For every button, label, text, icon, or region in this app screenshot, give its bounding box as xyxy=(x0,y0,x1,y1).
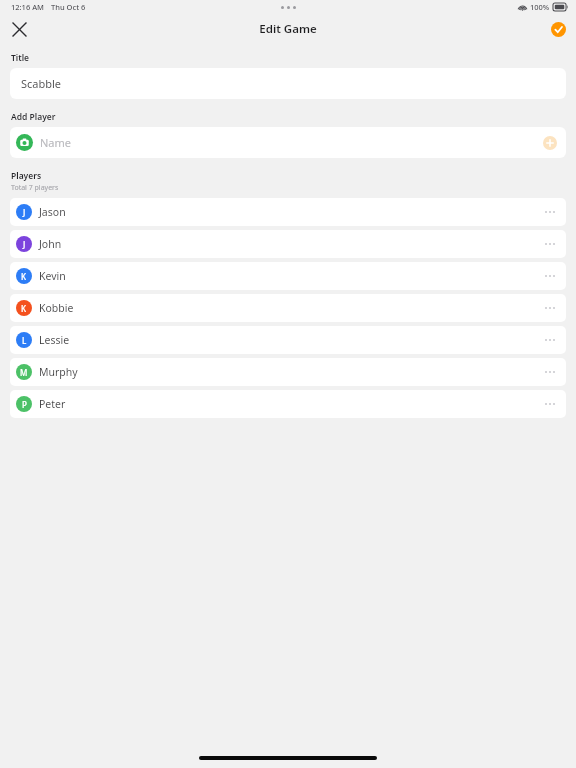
staticText: L xyxy=(22,335,27,346)
button[interactable]: Scabble xyxy=(10,68,566,99)
button[interactable]: J xyxy=(10,198,566,226)
staticText: J xyxy=(23,207,26,218)
button[interactable]: More options for Kevin xyxy=(540,266,560,286)
button[interactable]: More options for Kobbie xyxy=(540,298,560,318)
staticText: K xyxy=(21,303,27,314)
staticText: Name xyxy=(40,135,72,150)
staticText: Total 7 players xyxy=(11,183,59,193)
staticText: Peter xyxy=(39,397,66,411)
staticText: John xyxy=(39,237,62,251)
staticText: 100% xyxy=(530,2,550,12)
button[interactable]: M xyxy=(10,358,566,386)
staticText: Thu Oct 6 xyxy=(51,2,86,12)
staticText: 12:16 AM xyxy=(11,2,44,12)
button[interactable]: More options for Lessie xyxy=(540,330,560,350)
staticText: Players xyxy=(11,170,42,182)
button[interactable]: More options for Peter xyxy=(540,394,560,414)
staticText: Kevin xyxy=(39,269,66,283)
staticText: J xyxy=(23,239,26,250)
staticText: Jason xyxy=(39,205,66,219)
staticText: P xyxy=(22,399,27,410)
staticText: M xyxy=(20,367,28,378)
button[interactable]: J xyxy=(10,230,566,258)
button[interactable]: Add player xyxy=(540,133,560,153)
button[interactable]: L xyxy=(10,326,566,354)
staticText: Lessie xyxy=(39,333,70,347)
staticText: K xyxy=(21,271,27,282)
staticText: Murphy xyxy=(39,365,78,379)
staticText: Edit Game xyxy=(259,21,317,37)
button[interactable]: Save xyxy=(547,18,569,40)
staticText: Scabble xyxy=(21,76,62,91)
staticText: Add Player xyxy=(11,111,56,123)
button[interactable]: More options for Jason xyxy=(540,202,560,222)
button[interactable]: P xyxy=(10,390,566,418)
staticText: Kobbie xyxy=(39,301,74,315)
button[interactable]: Name xyxy=(10,127,566,158)
button[interactable]: Close xyxy=(6,16,32,42)
button[interactable]: More options for John xyxy=(540,234,560,254)
staticText: Title xyxy=(11,52,30,64)
button[interactable]: K xyxy=(10,294,566,322)
button[interactable]: More options for Murphy xyxy=(540,362,560,382)
button[interactable]: K xyxy=(10,262,566,290)
